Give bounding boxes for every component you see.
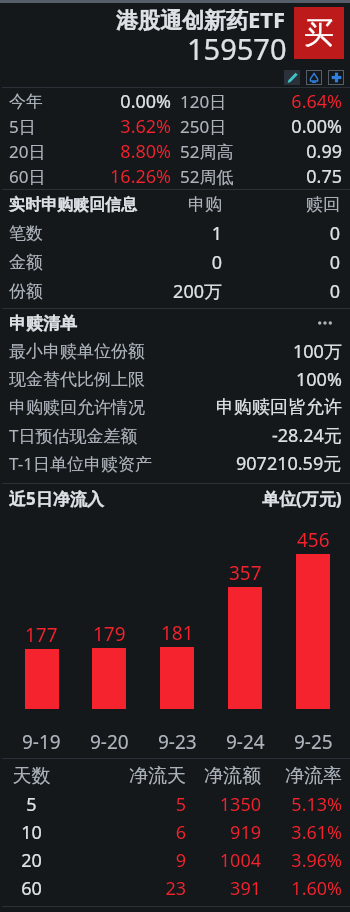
staticText: 申购赎回允许情况 — [9, 397, 145, 418]
staticText: 3.96% — [261, 848, 342, 873]
staticText: 9-19 — [22, 729, 61, 755]
staticText: 23 — [54, 876, 186, 901]
staticText: 0 — [222, 250, 340, 275]
staticText: 9-20 — [90, 729, 129, 755]
staticText: 最小申赎单位份额 — [9, 341, 145, 362]
staticText: 60 — [9, 876, 54, 901]
button[interactable]: Price alert — [306, 70, 322, 85]
staticText: 100万 — [293, 339, 342, 364]
staticText: 200万 — [144, 279, 222, 304]
staticText: 1004 — [186, 848, 261, 873]
staticText: 60日 — [9, 165, 46, 188]
staticText: 3.62% — [40, 114, 171, 139]
staticText: 净流额 — [186, 764, 261, 788]
staticText: 52周低 — [180, 165, 234, 188]
staticText: 20日 — [9, 140, 46, 163]
button[interactable]: 最小申赎单位份额 — [9, 337, 342, 365]
staticText: 申赎清单 — [9, 313, 77, 334]
button[interactable]: 5 — [9, 790, 342, 818]
staticText: 0 — [144, 250, 222, 275]
staticText: 赎回 — [222, 194, 340, 215]
staticText: 357 — [229, 560, 262, 586]
button[interactable]: 10 — [9, 818, 342, 846]
staticText: 今年 — [9, 91, 43, 112]
staticText: 天数 — [9, 764, 54, 788]
button[interactable]: 20日 — [9, 139, 171, 164]
staticText: 20 — [9, 848, 54, 873]
staticText: 1 — [144, 221, 222, 246]
button[interactable]: T日预估现金差额 — [9, 421, 342, 449]
staticText: 买 — [304, 14, 334, 52]
staticText: 179 — [93, 621, 126, 647]
staticText: 181 — [161, 620, 194, 646]
staticText: 单位(万元) — [262, 487, 342, 510]
button[interactable]: 现金替代比例上限 — [9, 365, 342, 393]
staticText: 919 — [186, 820, 261, 845]
staticText: -28.24元 — [272, 423, 342, 448]
staticText: 5 — [54, 792, 186, 817]
staticText: 0 — [222, 221, 340, 246]
staticText: 456 — [297, 527, 330, 553]
staticText: 6.64% — [231, 89, 342, 114]
staticText: 9-24 — [226, 729, 265, 755]
staticText: 8.80% — [50, 139, 171, 164]
button[interactable]: 120日 — [180, 89, 342, 114]
staticText: 120日 — [180, 90, 227, 113]
staticText: 177 — [25, 622, 58, 648]
staticText: 份额 — [9, 281, 144, 302]
button[interactable]: Add to watchlist — [328, 70, 344, 85]
staticText: 9-25 — [294, 729, 333, 755]
staticText: 现金替代比例上限 — [9, 369, 145, 390]
staticText: 6 — [54, 820, 186, 845]
staticText: 笔数 — [9, 223, 144, 244]
button[interactable]: T-1日单位申赎资产 — [9, 449, 342, 477]
button[interactable]: Edit — [284, 70, 300, 85]
staticText: 16.26% — [50, 164, 171, 189]
staticText: 5日 — [9, 115, 36, 138]
staticText: 0.00% — [231, 114, 342, 139]
staticText: 391 — [186, 876, 261, 901]
staticText: 金额 — [9, 252, 144, 273]
button[interactable]: 60 — [9, 874, 342, 902]
staticText: 5 — [9, 792, 54, 817]
staticText: 907210.59元 — [236, 451, 342, 476]
button[interactable]: 今年 — [9, 89, 171, 114]
staticText: 9-23 — [158, 729, 197, 755]
staticText: 10 — [9, 820, 54, 845]
button[interactable]: 60日 — [9, 164, 171, 189]
staticText: 159570 — [187, 29, 287, 68]
staticText: 0 — [222, 279, 340, 304]
staticText: 近5日净流入 — [9, 487, 104, 510]
staticText: 5.13% — [261, 792, 342, 817]
staticText: 9 — [54, 848, 186, 873]
staticText: 净流天 — [54, 764, 186, 788]
staticText: 0.00% — [47, 89, 171, 114]
button[interactable]: 申购赎回允许情况 — [9, 393, 342, 421]
button[interactable]: 250日 — [180, 114, 342, 139]
button[interactable]: 52周高 — [180, 139, 342, 164]
staticText: 250日 — [180, 115, 227, 138]
staticText: 3.61% — [261, 820, 342, 845]
staticText: 1.60% — [261, 876, 342, 901]
staticText: 净流率 — [261, 764, 342, 788]
button[interactable]: More options — [315, 313, 335, 333]
staticText: 实时申购赎回信息 — [9, 195, 144, 215]
staticText: 100% — [296, 367, 342, 392]
staticText: 0.99 — [238, 139, 342, 164]
staticText: 52周高 — [180, 140, 234, 163]
staticText: 申购 — [144, 194, 222, 215]
staticText: 1350 — [186, 792, 261, 817]
staticText: 申购赎回皆允许 — [216, 396, 342, 419]
button[interactable]: 5日 — [9, 114, 171, 139]
staticText: 港股通创新药ETF — [116, 4, 286, 34]
staticText: T-1日单位申赎资产 — [9, 452, 152, 475]
button[interactable]: 20 — [9, 846, 342, 874]
button[interactable]: 买 — [294, 7, 344, 59]
button[interactable]: 52周低 — [180, 164, 342, 189]
staticText: T日预估现金差额 — [9, 424, 138, 447]
staticText: 0.75 — [238, 164, 342, 189]
